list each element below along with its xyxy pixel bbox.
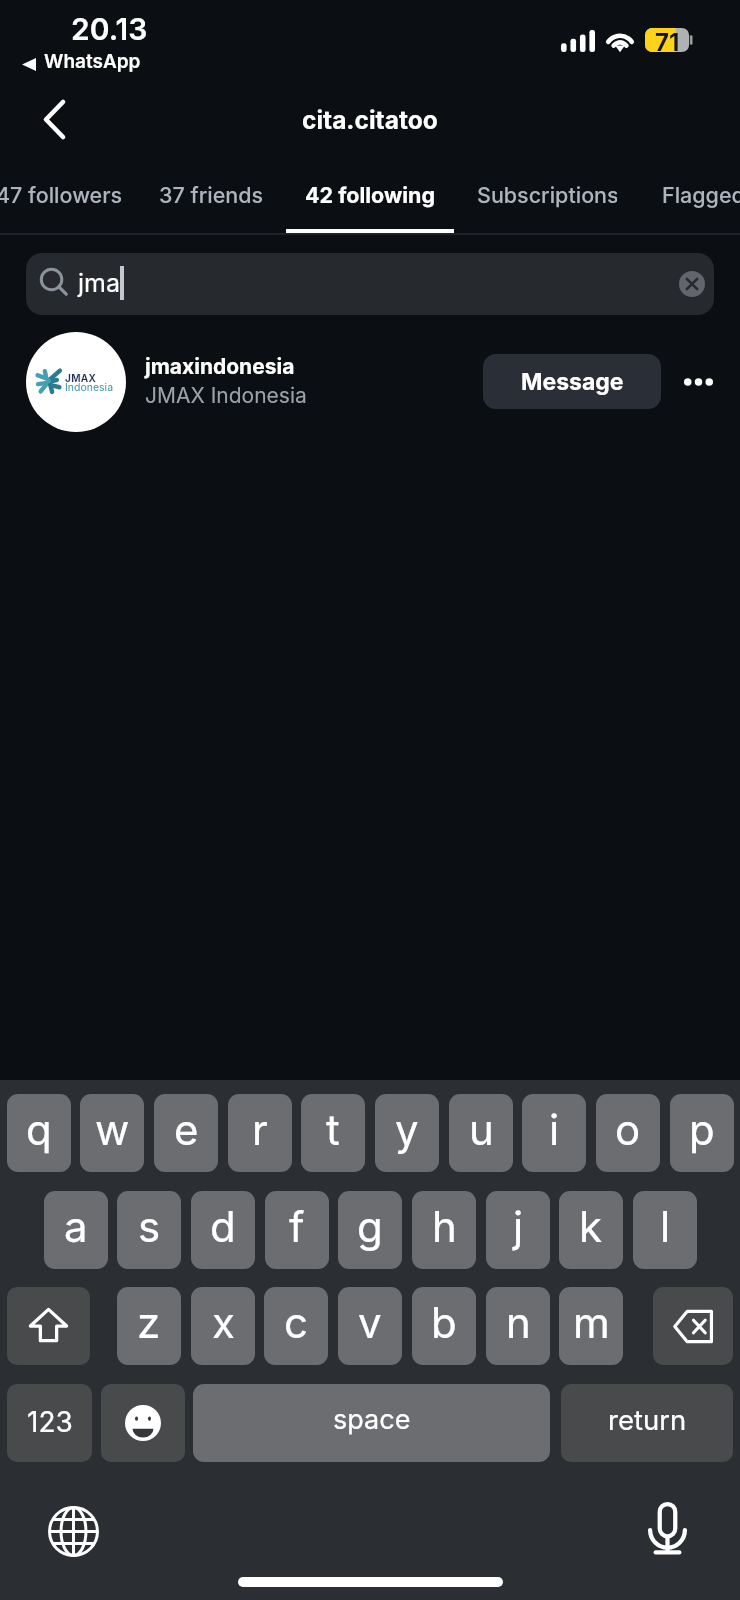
button[interactable]: b [412,1287,476,1365]
staticText: o [615,1104,641,1155]
button[interactable]: Flagged [662,160,740,234]
button[interactable]: h [412,1191,476,1269]
staticText: 123 [27,1405,73,1439]
button[interactable]: o [596,1094,660,1172]
button[interactable]: k [559,1191,623,1269]
staticText: e [174,1104,199,1155]
staticText: h [432,1201,457,1252]
staticText: jmaxindonesia [145,354,295,379]
staticText: 42 following [305,182,436,208]
staticText: t [326,1104,340,1155]
staticText: w [95,1104,130,1155]
staticText: return [608,1403,687,1436]
button[interactable]: u [449,1094,513,1172]
staticText: cita.citatoo [302,105,438,135]
button[interactable]: Numbers [7,1384,92,1462]
staticText: n [506,1297,531,1348]
staticText: c [284,1297,308,1348]
button[interactable]: Back [23,87,87,151]
staticText: 37 friends [159,182,264,208]
staticText: x [212,1297,235,1348]
staticText: m [573,1297,610,1348]
button[interactable]: Back to WhatsApp [18,47,144,83]
staticText: z [137,1297,161,1348]
staticText: p [689,1104,715,1155]
staticText: Indonesia [65,381,114,394]
button[interactable]: n [486,1287,550,1365]
button[interactable]: v [338,1287,402,1365]
button[interactable]: d [191,1191,255,1269]
staticText: WhatsApp [44,50,141,73]
staticText: Message [521,368,624,396]
button[interactable]: Change keyboard [43,1501,103,1561]
button[interactable]: 47 followers [0,160,143,234]
staticText: d [210,1201,236,1252]
staticText: 47 followers [0,182,123,208]
button[interactable]: Shift [7,1287,90,1365]
button[interactable]: z [117,1287,181,1365]
button[interactable]: l [633,1191,697,1269]
staticText: q [26,1104,52,1155]
button[interactable]: 37 friends [158,160,265,234]
button[interactable]: space [193,1384,550,1462]
staticText: g [357,1201,383,1252]
button[interactable]: JMAX [0,330,740,432]
button[interactable]: Subscriptions [477,160,617,234]
button[interactable]: g [338,1191,402,1269]
staticText: j [513,1201,524,1252]
staticText: k [579,1201,603,1252]
staticText: a [64,1201,88,1252]
button[interactable]: c [264,1287,328,1365]
staticText: s [138,1201,161,1252]
button[interactable]: return [561,1384,733,1462]
staticText: 71 [655,28,680,52]
staticText: jma [78,268,120,298]
staticText: b [431,1297,457,1348]
button[interactable]: q [7,1094,71,1172]
button[interactable]: j [486,1191,550,1269]
staticText: JMAX Indonesia [145,383,307,408]
button[interactable]: Backspace [653,1287,733,1365]
button[interactable]: f [265,1191,329,1269]
staticText: JMAX [65,372,97,384]
staticText: v [358,1297,382,1348]
button[interactable]: w [80,1094,144,1172]
staticText: i [549,1104,560,1155]
staticText: l [660,1201,671,1252]
button[interactable]: p [670,1094,734,1172]
staticText: y [395,1104,419,1155]
button[interactable]: x [191,1287,255,1365]
button[interactable]: a [44,1191,108,1269]
button[interactable]: t [301,1094,365,1172]
staticText: space [333,1403,411,1436]
button[interactable]: Emoji [101,1384,185,1462]
button[interactable]: 42 following [286,160,454,234]
button[interactable]: s [117,1191,181,1269]
staticText: Subscriptions [477,182,617,208]
staticText: Flagged [662,182,740,208]
button[interactable]: i [522,1094,586,1172]
button[interactable]: Message [483,354,661,409]
staticText: 20.13 [71,11,148,47]
button[interactable]: Clear search [679,271,705,297]
button[interactable]: m [559,1287,623,1365]
staticText: u [469,1104,494,1155]
staticText: f [289,1201,305,1252]
staticText: r [252,1104,268,1155]
button[interactable]: e [154,1094,218,1172]
button[interactable]: Dictation [637,1499,697,1559]
button[interactable]: r [228,1094,292,1172]
button[interactable]: jma [26,253,714,315]
button[interactable]: More options [672,354,724,409]
button[interactable]: y [375,1094,439,1172]
